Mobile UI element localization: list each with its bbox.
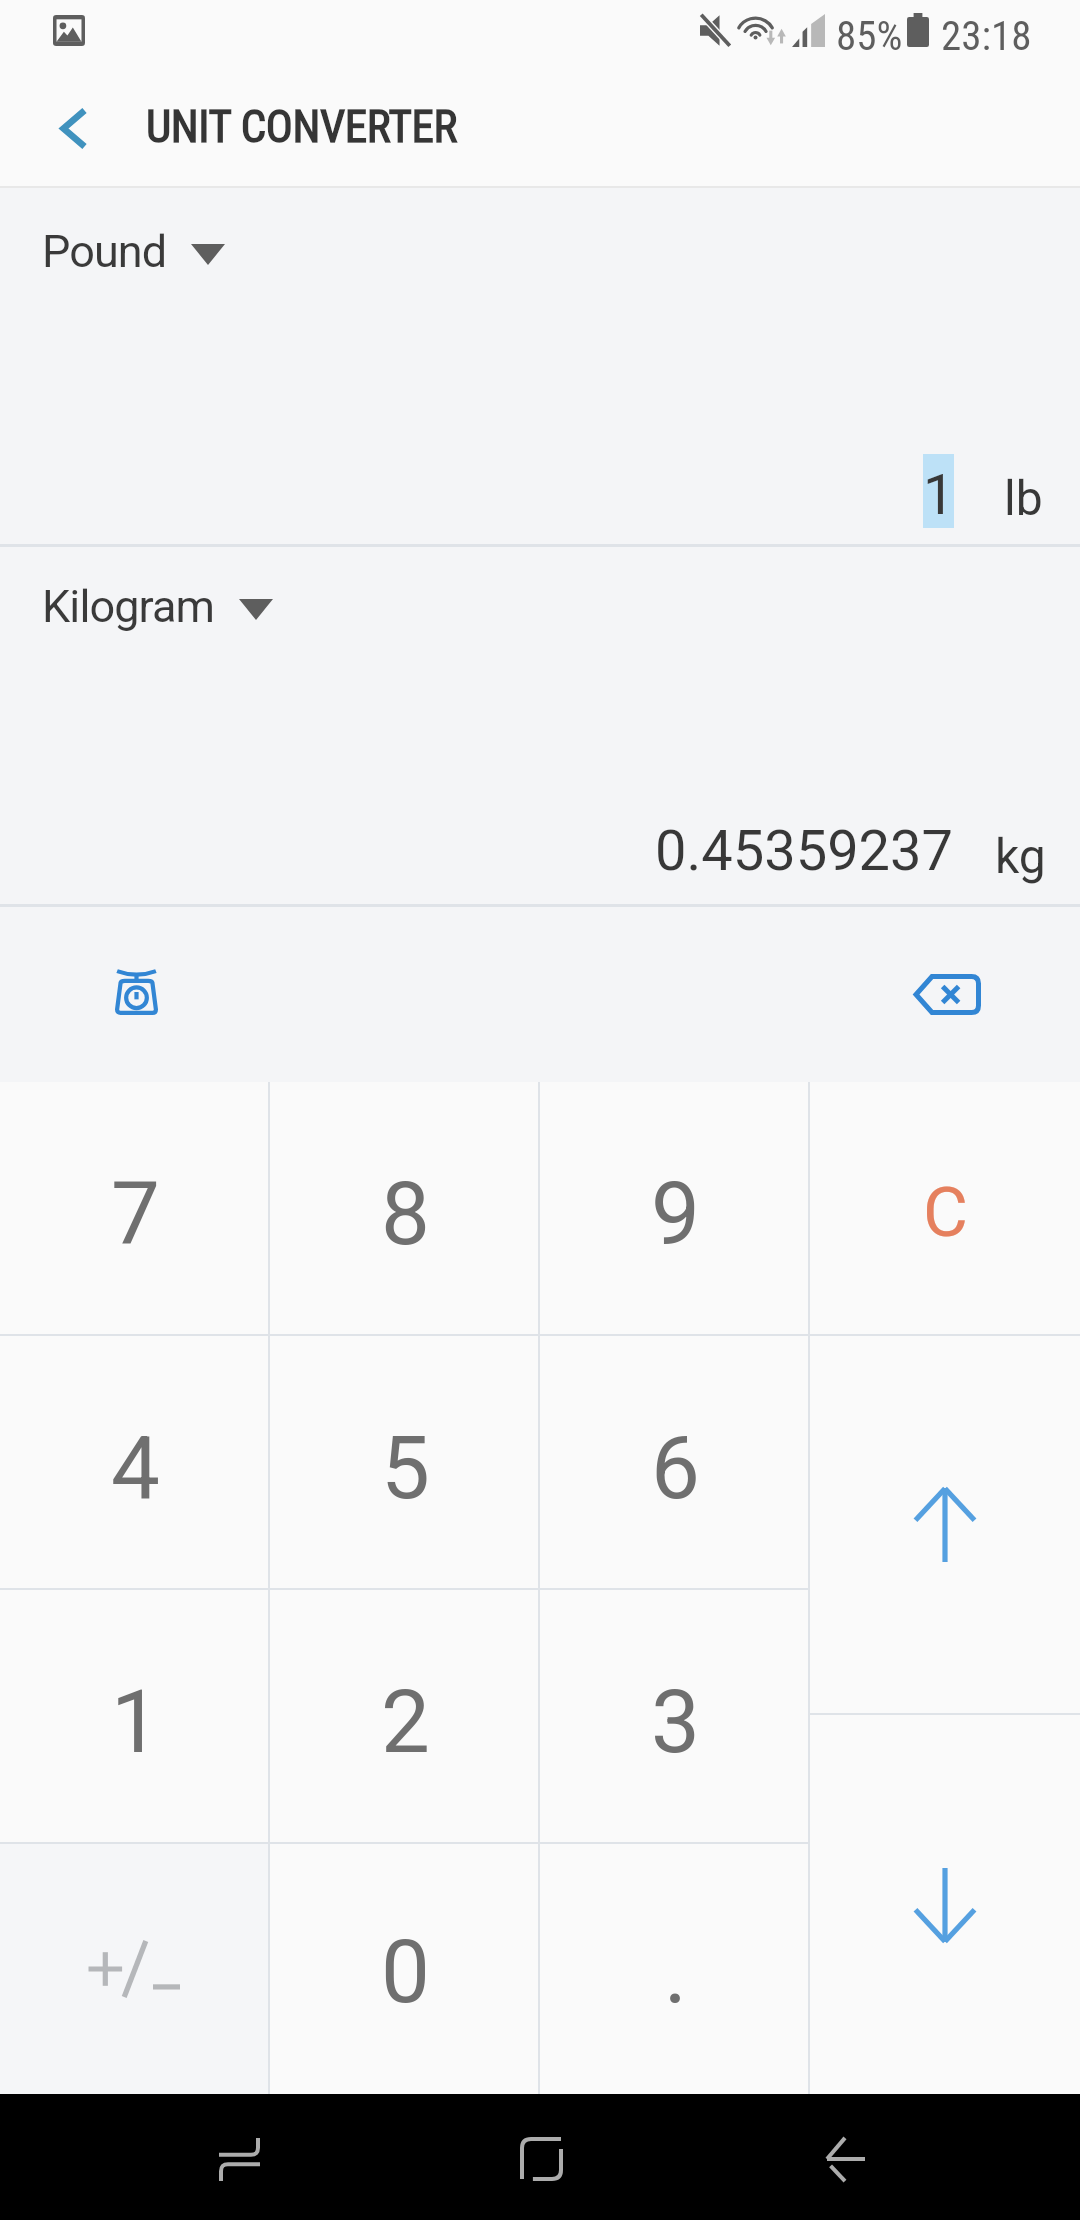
button[interactable]: 7 <box>0 1082 270 1334</box>
staticText: 8 <box>381 1163 430 1265</box>
staticText: 9 <box>651 1163 700 1265</box>
button[interactable]: 4 <box>0 1336 270 1588</box>
button[interactable]: Swap to lower field <box>810 1715 1080 2094</box>
button[interactable] <box>0 1844 270 2094</box>
staticText: kg <box>995 828 1046 884</box>
button[interactable]: Back <box>795 2109 895 2209</box>
staticText: 4 <box>111 1417 160 1519</box>
button[interactable]: Home <box>491 2109 591 2209</box>
staticText: Kilogram <box>42 580 215 633</box>
staticText: 5 <box>381 1417 430 1519</box>
button[interactable]: 6 <box>540 1336 810 1588</box>
staticText: Pound <box>42 225 167 278</box>
button[interactable]: 5 <box>270 1336 540 1588</box>
button[interactable]: 1 <box>0 1590 270 1842</box>
button[interactable]: 3 <box>540 1590 810 1842</box>
staticText: 1 <box>923 462 954 528</box>
button[interactable]: Backspace <box>886 934 1006 1054</box>
button[interactable]: . <box>540 1844 810 2094</box>
staticText: C <box>923 1172 968 1253</box>
button[interactable]: Pound <box>25 211 249 292</box>
staticText: UNIT CONVERTER <box>146 100 457 153</box>
button[interactable]: 2 <box>270 1590 540 1842</box>
staticText: . <box>664 1921 687 2023</box>
staticText: 0.45359237 <box>655 818 954 884</box>
button[interactable]: Swap to upper field <box>810 1336 1080 1713</box>
staticText: 6 <box>651 1417 700 1519</box>
staticText: 85% <box>836 12 903 60</box>
button[interactable]: Navigate up <box>24 80 120 176</box>
staticText: 7 <box>111 1163 160 1265</box>
button[interactable]: 9 <box>540 1082 810 1334</box>
staticText: 2 <box>381 1671 430 1773</box>
button[interactable]: Kilogram <box>25 566 297 647</box>
button[interactable]: 8 <box>270 1082 540 1334</box>
staticText: 1 <box>111 1671 160 1773</box>
button[interactable]: 0 <box>270 1844 540 2094</box>
button[interactable]: C <box>810 1082 1080 1334</box>
staticText: 0 <box>381 1921 430 2023</box>
staticText: 23:18 <box>941 12 1032 60</box>
button[interactable]: Kitchen scale <box>75 931 197 1053</box>
staticText: 3 <box>651 1671 700 1773</box>
button[interactable]: Recent apps <box>189 2109 289 2209</box>
staticText: lb <box>1004 470 1043 526</box>
